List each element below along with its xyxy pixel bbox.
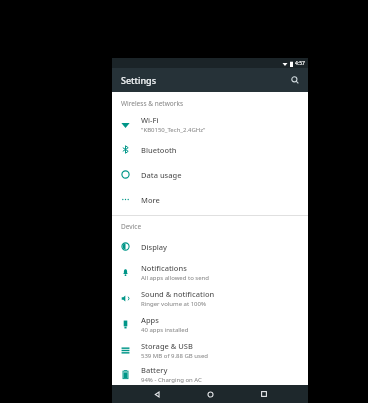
staticText: Device <box>121 222 142 231</box>
staticText: Apps <box>141 315 159 325</box>
staticText: Display <box>141 242 168 252</box>
staticText: Ringer volume at 100% <box>141 300 206 308</box>
staticText: 539 MB of 9.88 GB used <box>141 352 208 360</box>
button[interactable]: More <box>112 187 308 212</box>
button[interactable]: Display <box>112 234 308 259</box>
button[interactable]: Data usage <box>112 162 308 187</box>
button[interactable]: Sound & notification <box>112 285 308 311</box>
staticText: Data usage <box>141 170 182 180</box>
button[interactable]: Search <box>287 72 303 88</box>
staticText: 94% - Charging on AC <box>141 376 202 384</box>
button[interactable]: Battery <box>112 363 308 385</box>
staticText: Storage & USB <box>141 341 193 351</box>
button[interactable]: Apps <box>112 311 308 337</box>
staticText: Sound & notification <box>141 289 215 299</box>
staticText: Wireless & networks <box>121 99 183 108</box>
button[interactable]: Home <box>201 385 219 403</box>
staticText: Battery <box>141 365 168 375</box>
staticText: 40 apps installed <box>141 326 189 334</box>
staticText: Settings <box>121 74 157 86</box>
staticText: Bluetooth <box>141 145 177 155</box>
staticText: Notifications <box>141 263 187 273</box>
staticText: "KB0150_Tech_2.4GHz" <box>141 126 206 134</box>
staticText: More <box>141 195 160 205</box>
button[interactable]: Recents <box>255 385 273 403</box>
staticText: 4:57 <box>295 60 305 67</box>
button[interactable]: Wi-Fi <box>112 111 308 137</box>
button[interactable]: Notifications <box>112 259 308 285</box>
button[interactable]: Storage & USB <box>112 337 308 363</box>
staticText: Wi-Fi <box>141 115 159 125</box>
button[interactable]: Back <box>148 385 166 403</box>
button[interactable]: Bluetooth <box>112 137 308 162</box>
staticText: All apps allowed to send <box>141 274 210 282</box>
